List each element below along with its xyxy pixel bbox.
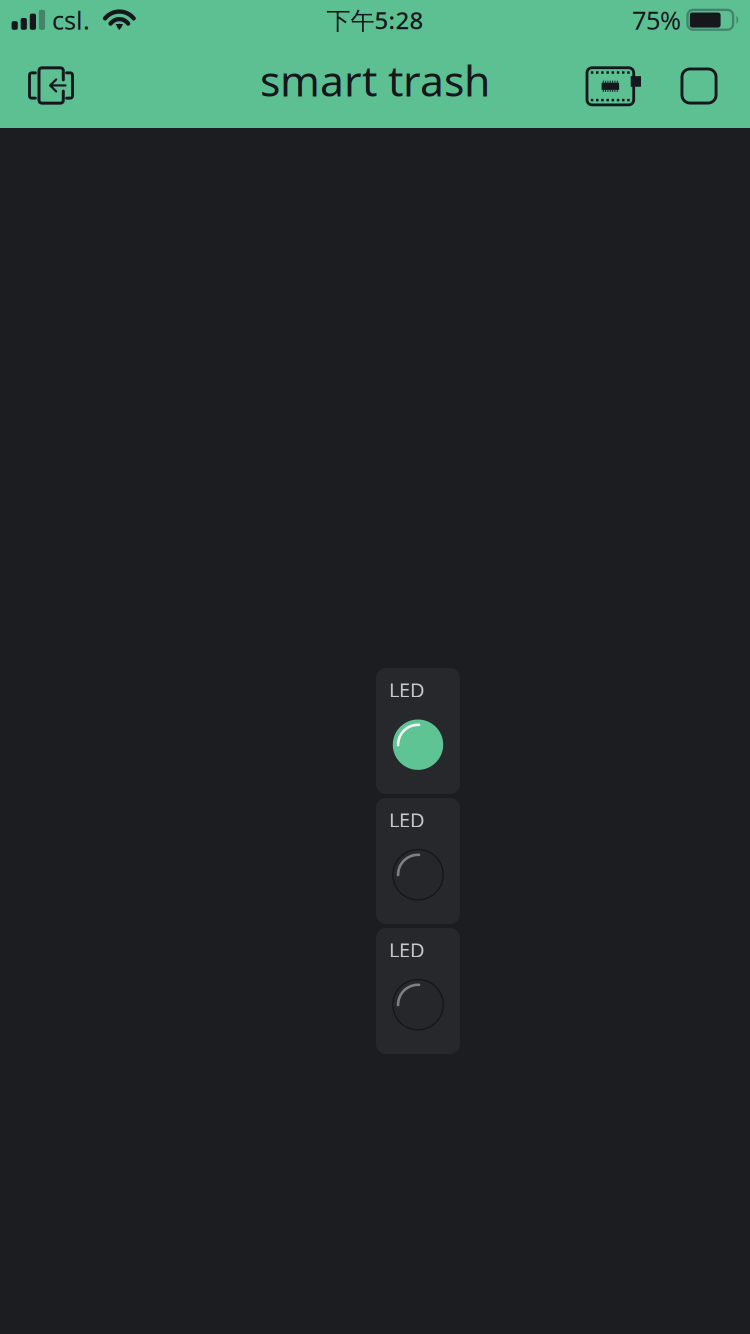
staticText: 75%: [632, 3, 681, 37]
staticText: 下午5:28: [326, 4, 423, 36]
staticText: LED: [389, 676, 425, 703]
staticText: smart trash: [260, 51, 490, 109]
button[interactable]: Sign out: [12, 41, 90, 129]
staticText: LED: [389, 936, 425, 963]
staticText: csl.: [52, 3, 90, 37]
button[interactable]: Device: [580, 42, 646, 130]
button[interactable]: Settings: [667, 42, 731, 130]
button[interactable]: LED: [376, 928, 460, 1054]
button[interactable]: LED: [376, 668, 460, 794]
staticText: LED: [389, 806, 425, 833]
button[interactable]: LED: [376, 798, 460, 924]
